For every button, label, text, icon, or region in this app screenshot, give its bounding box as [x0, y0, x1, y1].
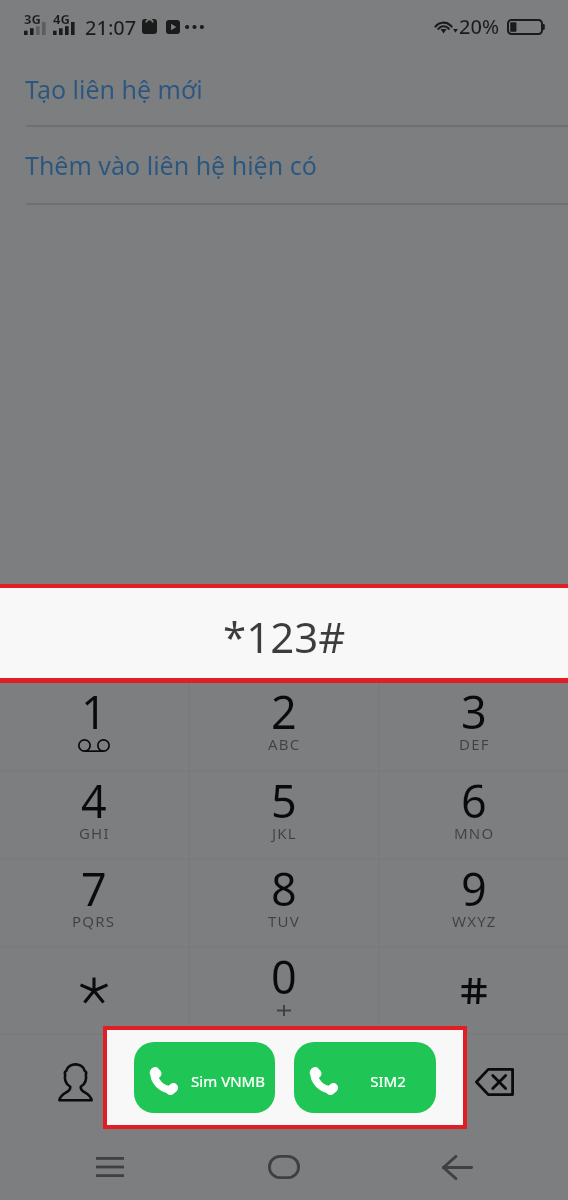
button[interactable]: 3 [380, 683, 568, 770]
button[interactable]: 2 [190, 683, 378, 770]
staticText: 0 [271, 946, 297, 1007]
staticText: PQRS [72, 911, 116, 931]
staticText: SIM2 [370, 1071, 406, 1091]
button[interactable]: Recents [78, 1135, 142, 1199]
staticText: DEF [459, 734, 490, 754]
staticText: 3G [24, 10, 41, 28]
staticText: ABC [268, 734, 301, 754]
button[interactable]: 5 [190, 772, 378, 858]
staticText: 4 [81, 770, 107, 831]
staticText: WXYZ [452, 911, 497, 931]
button[interactable] [380, 948, 568, 1034]
button[interactable]: 4 [0, 772, 188, 858]
staticText: Sim VNMB [191, 1071, 265, 1091]
staticText: GHI [79, 823, 110, 843]
button[interactable]: Home [252, 1135, 316, 1199]
staticText: 21:07 [85, 14, 137, 41]
button[interactable]: Backspace [459, 1047, 529, 1117]
staticText: 9 [461, 858, 487, 919]
staticText: 2 [271, 681, 297, 742]
staticText: 8 [271, 858, 297, 919]
staticText: Tạo liên hệ mới [25, 72, 203, 106]
staticText: TUV [268, 911, 300, 931]
button[interactable]: 7 [0, 860, 188, 946]
staticText: JKL [272, 823, 297, 843]
button[interactable]: Tạo liên hệ mới [0, 52, 568, 125]
staticText: MNO [454, 823, 495, 843]
button[interactable]: SIM2 [294, 1042, 436, 1113]
button[interactable]: 1 [0, 683, 188, 770]
button[interactable]: Sim VNMB [134, 1042, 275, 1113]
staticText: 4G [53, 10, 70, 28]
staticText: 7 [81, 858, 107, 919]
staticText: Thêm vào liên hệ hiện có [25, 148, 317, 182]
staticText: 5 [271, 770, 297, 831]
button[interactable]: 8 [190, 860, 378, 946]
button[interactable]: 6 [380, 772, 568, 858]
button[interactable] [0, 948, 188, 1034]
staticText: 6 [461, 770, 487, 831]
button[interactable]: Thêm vào liên hệ hiện có [0, 127, 568, 203]
staticText: 1 [81, 681, 107, 742]
staticText: 3 [461, 681, 487, 742]
button[interactable]: 0 [190, 948, 378, 1034]
button[interactable]: Back [425, 1135, 489, 1199]
button[interactable]: 9 [380, 860, 568, 946]
staticText: *123# [223, 608, 346, 665]
button[interactable]: Contacts [40, 1047, 110, 1117]
staticText: 20% [459, 13, 499, 40]
